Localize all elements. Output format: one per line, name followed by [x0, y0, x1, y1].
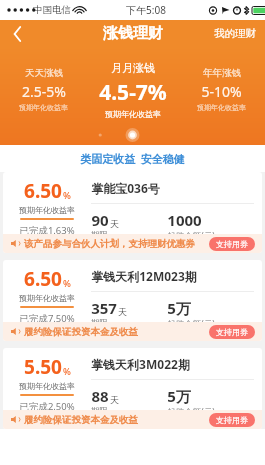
staticText: 预期年化收益率: [19, 103, 68, 112]
staticText: 88: [91, 386, 109, 406]
staticText: 6.50: [24, 266, 62, 292]
staticText: 357: [91, 298, 117, 318]
button[interactable]: 我的理财: [205, 20, 265, 47]
staticText: 涨钱理财: [103, 24, 163, 43]
staticText: 2.5-5%: [22, 82, 66, 101]
staticText: 月月涨钱: [111, 61, 155, 75]
staticText: 年年涨钱: [203, 67, 241, 79]
staticText: %: [63, 189, 71, 202]
staticText: 4.5-7%: [99, 78, 167, 107]
button[interactable]: 天天涨钱: [0, 61, 87, 112]
button[interactable]: 支持用券: [209, 413, 255, 427]
staticText: 已完成2.50%: [19, 400, 75, 410]
staticText: 5-10%: [201, 82, 242, 101]
staticText: 天: [110, 394, 119, 405]
button[interactable]: 支持用券: [209, 325, 255, 339]
staticText: 期限: [91, 318, 108, 322]
staticText: 掌钱天利3M022期: [91, 356, 190, 372]
staticText: 起购金额(元): [167, 406, 215, 410]
staticText: 类固定收益 安全稳健: [80, 151, 185, 166]
staticText: 支持用券: [216, 327, 248, 337]
staticText: 预期年化收益率: [19, 293, 75, 303]
staticText: 已完成1.63%: [19, 224, 75, 234]
button[interactable]: 6.50: [3, 172, 262, 253]
staticText: 预期年化收益率: [105, 109, 161, 119]
staticText: %: [63, 277, 71, 290]
button[interactable]: 返回: [0, 20, 34, 47]
staticText: 履约险保证投资本金及收益: [24, 326, 138, 338]
staticText: 该产品参与合伙人计划，支持理财优惠券: [24, 238, 195, 250]
staticText: 下午5:08: [126, 3, 166, 17]
staticText: 掌钱天利12M023期: [91, 268, 197, 284]
staticText: 支持用券: [216, 415, 248, 425]
button[interactable]: 支持用券: [209, 237, 255, 251]
staticText: 天: [118, 306, 127, 317]
staticText: 5万: [167, 386, 191, 406]
staticText: 履约险保证投资本金及收益: [24, 414, 138, 426]
staticText: 起购金额(元): [167, 230, 215, 234]
staticText: 天: [110, 218, 119, 229]
staticText: 掌能宝036号: [91, 180, 160, 196]
button[interactable]: 年年涨钱: [178, 61, 265, 112]
staticText: %: [63, 365, 71, 378]
staticText: 支持用券: [216, 239, 248, 249]
staticText: 预期年化收益率: [197, 103, 246, 112]
staticText: 5万: [167, 298, 191, 318]
staticText: 期限: [91, 406, 108, 410]
staticText: 5.50: [24, 354, 62, 380]
staticText: 起购金额(元): [167, 318, 215, 322]
staticText: 6.50: [24, 178, 62, 204]
staticText: 天天涨钱: [25, 67, 63, 79]
staticText: 期限: [91, 230, 108, 234]
staticText: 中国电信: [33, 4, 71, 16]
staticText: 我的理财: [214, 27, 256, 40]
staticText: 预期年化收益率: [19, 205, 75, 215]
staticText: 已完成7.50%: [19, 312, 75, 322]
staticText: 预期年化收益率: [19, 381, 75, 391]
button[interactable]: 6.50: [3, 260, 262, 341]
staticText: 1000: [167, 210, 202, 230]
button[interactable]: 5.50: [3, 348, 262, 429]
staticText: 90: [91, 210, 109, 230]
